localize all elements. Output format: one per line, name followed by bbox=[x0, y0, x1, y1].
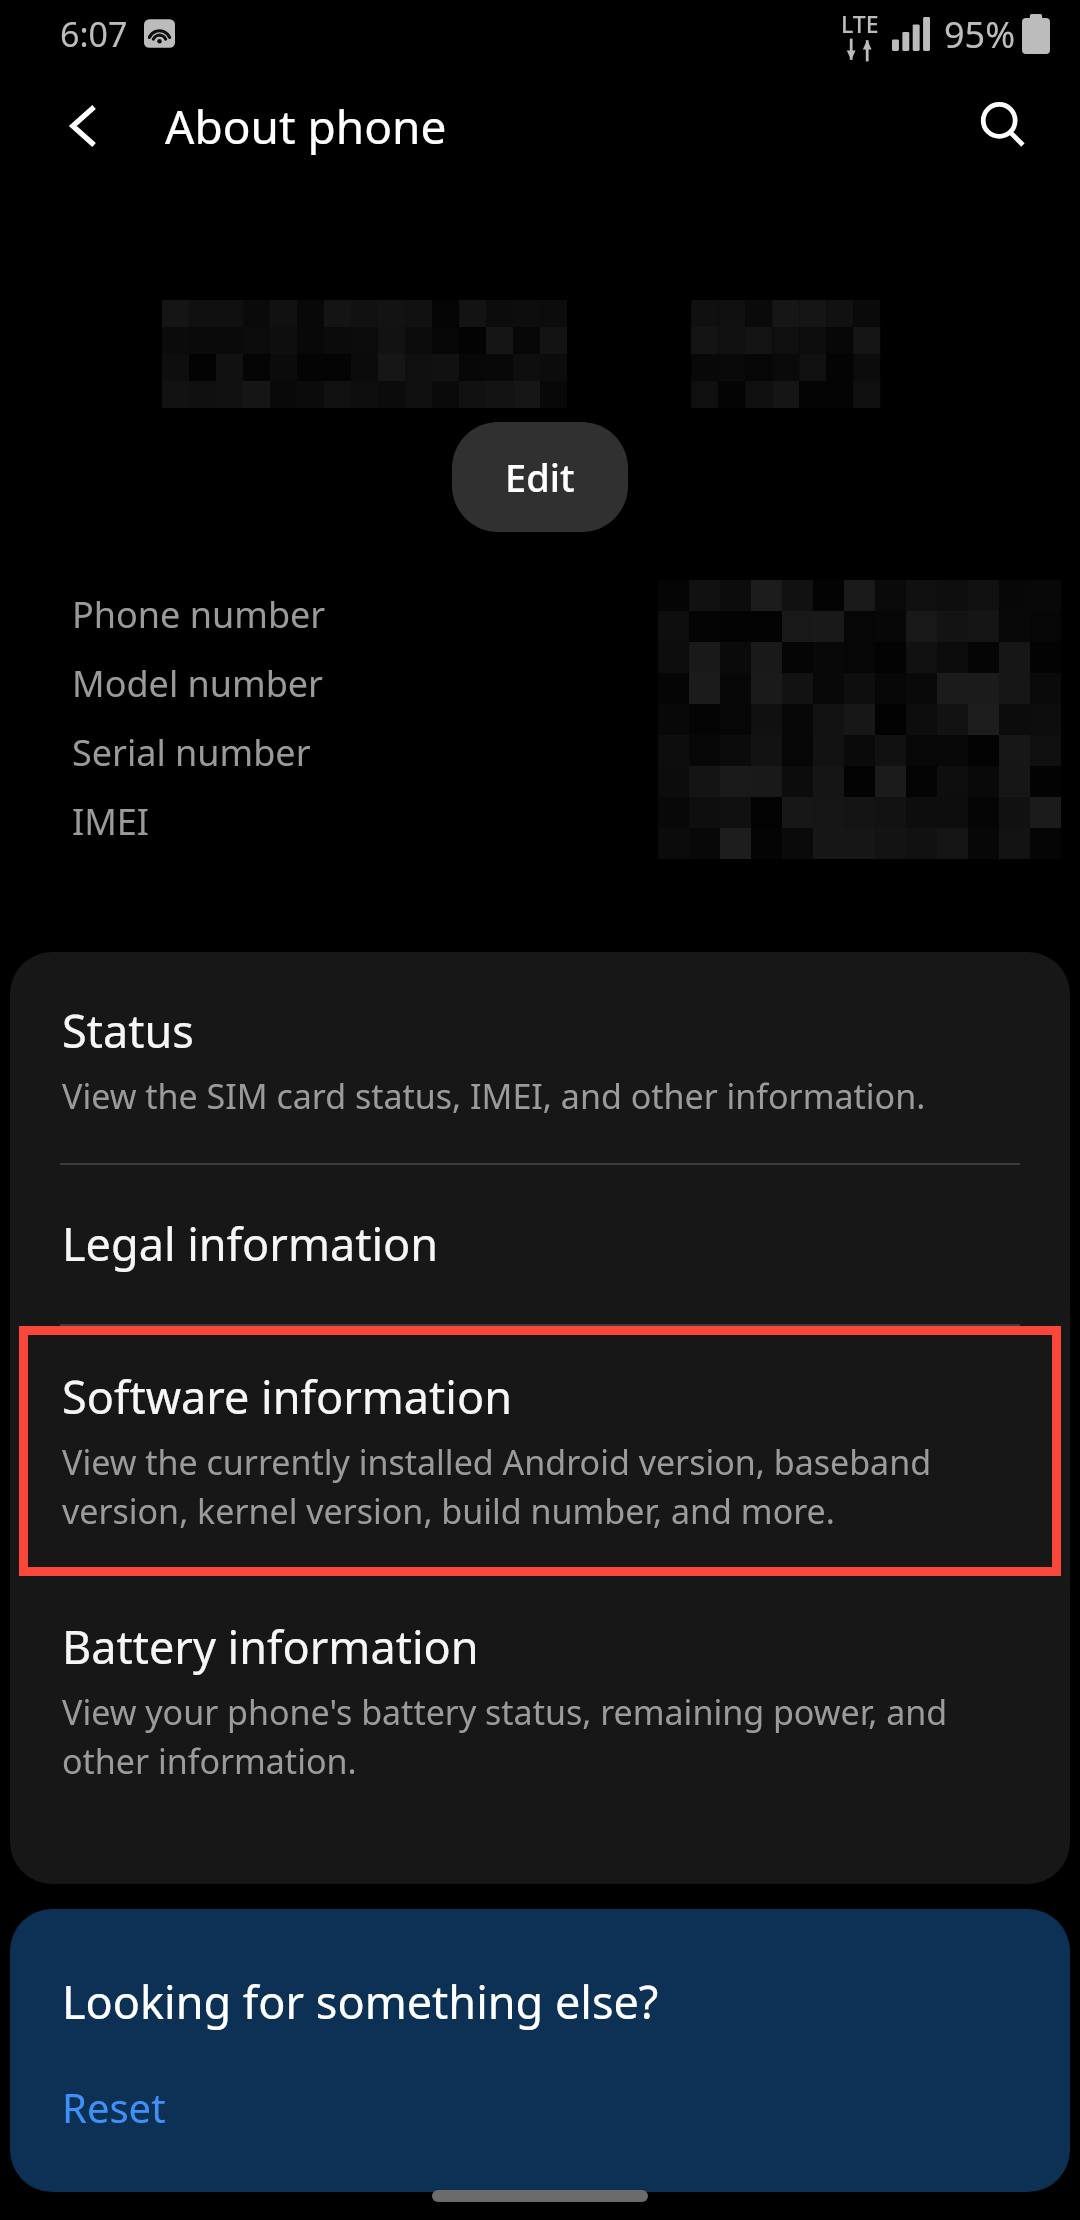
staticText: Battery information bbox=[62, 1616, 479, 1677]
staticText: IMEI bbox=[72, 797, 150, 846]
staticText: Model number bbox=[72, 659, 323, 708]
button[interactable]: Software information bbox=[10, 1326, 1070, 1576]
staticText: View the currently installed Android ver… bbox=[62, 1439, 1024, 1534]
staticText: Status bbox=[62, 1000, 194, 1061]
button[interactable]: Status bbox=[10, 952, 1070, 1163]
staticText: Reset bbox=[62, 2080, 166, 2134]
button[interactable]: Legal information bbox=[10, 1165, 1070, 1324]
staticText: View the SIM card status, IMEI, and othe… bbox=[62, 1073, 926, 1119]
staticText: 95% bbox=[944, 10, 1016, 59]
staticText: Phone number bbox=[72, 590, 326, 639]
button[interactable]: IMEI bbox=[0, 787, 1080, 856]
staticText: LTE bbox=[841, 8, 879, 39]
button[interactable]: Battery information bbox=[10, 1576, 1070, 1832]
button[interactable]: Phone number bbox=[0, 580, 1080, 649]
button[interactable]: Edit bbox=[452, 422, 628, 532]
staticText: 6:07 bbox=[60, 11, 128, 57]
button[interactable]: Search bbox=[970, 94, 1034, 158]
button[interactable]: Reset bbox=[62, 2080, 166, 2134]
staticText: View your phone's battery status, remain… bbox=[62, 1689, 1024, 1784]
staticText: Legal information bbox=[62, 1213, 439, 1274]
button[interactable]: Looking for something else? bbox=[10, 1909, 1070, 2192]
staticText: Looking for something else? bbox=[62, 1971, 659, 2032]
staticText: Edit bbox=[505, 451, 575, 503]
staticText: Software information bbox=[62, 1366, 512, 1427]
staticText: About phone bbox=[165, 95, 447, 158]
button[interactable]: Serial number bbox=[0, 718, 1080, 787]
staticText: Serial number bbox=[72, 728, 311, 777]
button[interactable]: Navigate up bbox=[56, 98, 112, 154]
button[interactable]: Model number bbox=[0, 649, 1080, 718]
